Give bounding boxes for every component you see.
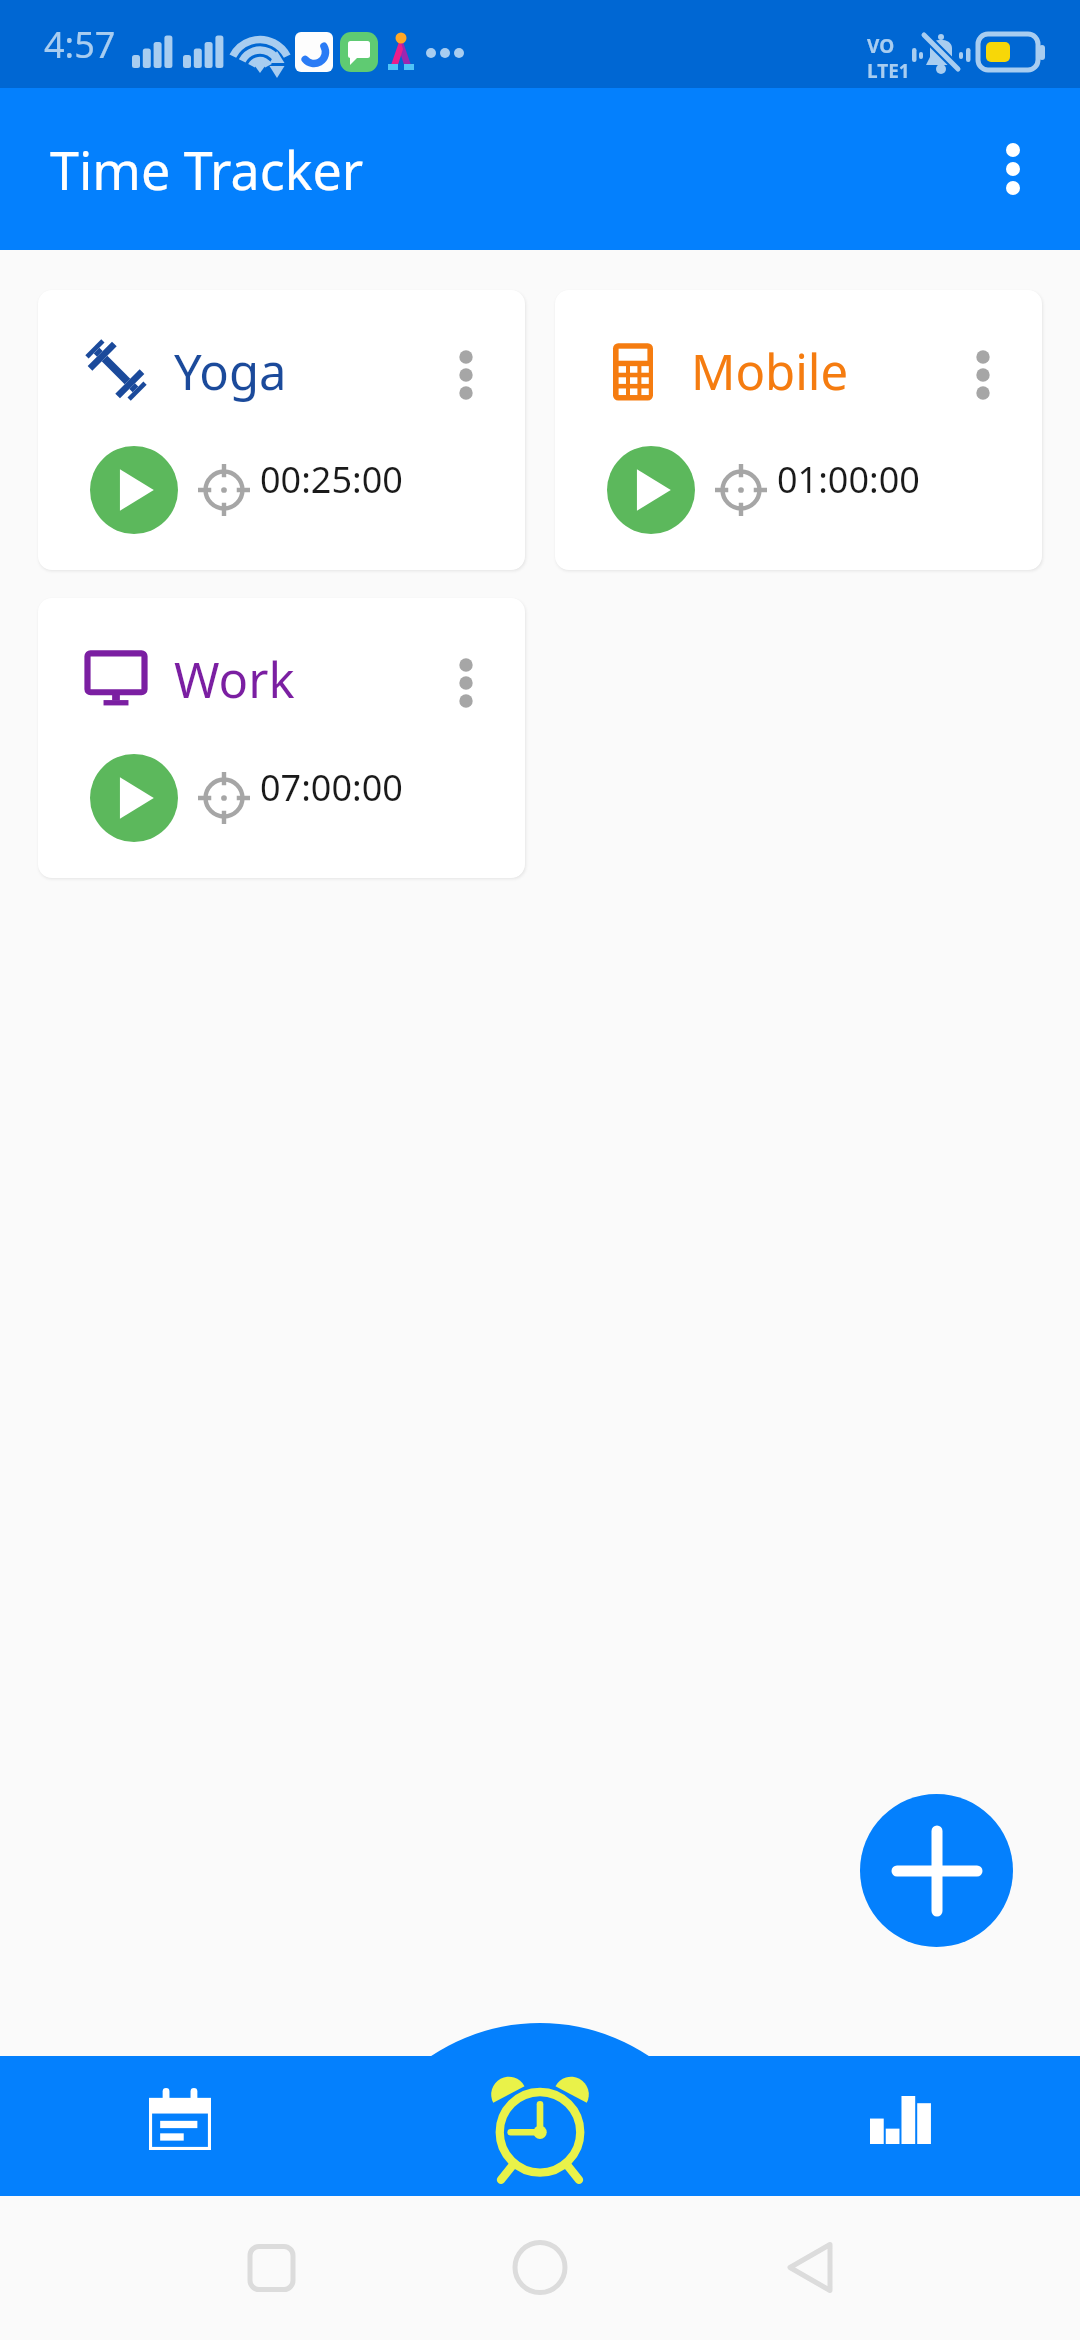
button[interactable]: Options xyxy=(428,645,504,721)
staticText: Yoga xyxy=(174,338,287,405)
button[interactable]: Timers xyxy=(360,2056,720,2196)
staticText: Mobile xyxy=(691,338,849,405)
staticText: 00:25:00 xyxy=(260,455,403,504)
staticText: 01:00:00 xyxy=(777,455,920,504)
button[interactable]: More options xyxy=(968,124,1058,214)
button[interactable]: Yoga xyxy=(38,290,525,570)
staticText: Time Tracker xyxy=(50,134,364,205)
button[interactable]: Records xyxy=(0,2056,360,2196)
staticText: VO xyxy=(867,33,895,59)
button[interactable]: Add new tracker xyxy=(860,1794,1013,1947)
button[interactable]: Mobile xyxy=(555,290,1042,570)
staticText: 07:00:00 xyxy=(260,763,403,812)
button[interactable]: Options xyxy=(945,337,1021,413)
button[interactable]: Statistics xyxy=(720,2056,1080,2196)
button[interactable]: Work xyxy=(38,598,525,878)
staticText: 4:57 xyxy=(44,20,116,69)
staticText: Work xyxy=(174,646,295,713)
button[interactable]: Start timer xyxy=(607,446,695,534)
button[interactable]: Start timer xyxy=(90,754,178,842)
button[interactable]: Options xyxy=(428,337,504,413)
staticText: LTE1 xyxy=(867,58,910,84)
button[interactable]: Start timer xyxy=(90,446,178,534)
